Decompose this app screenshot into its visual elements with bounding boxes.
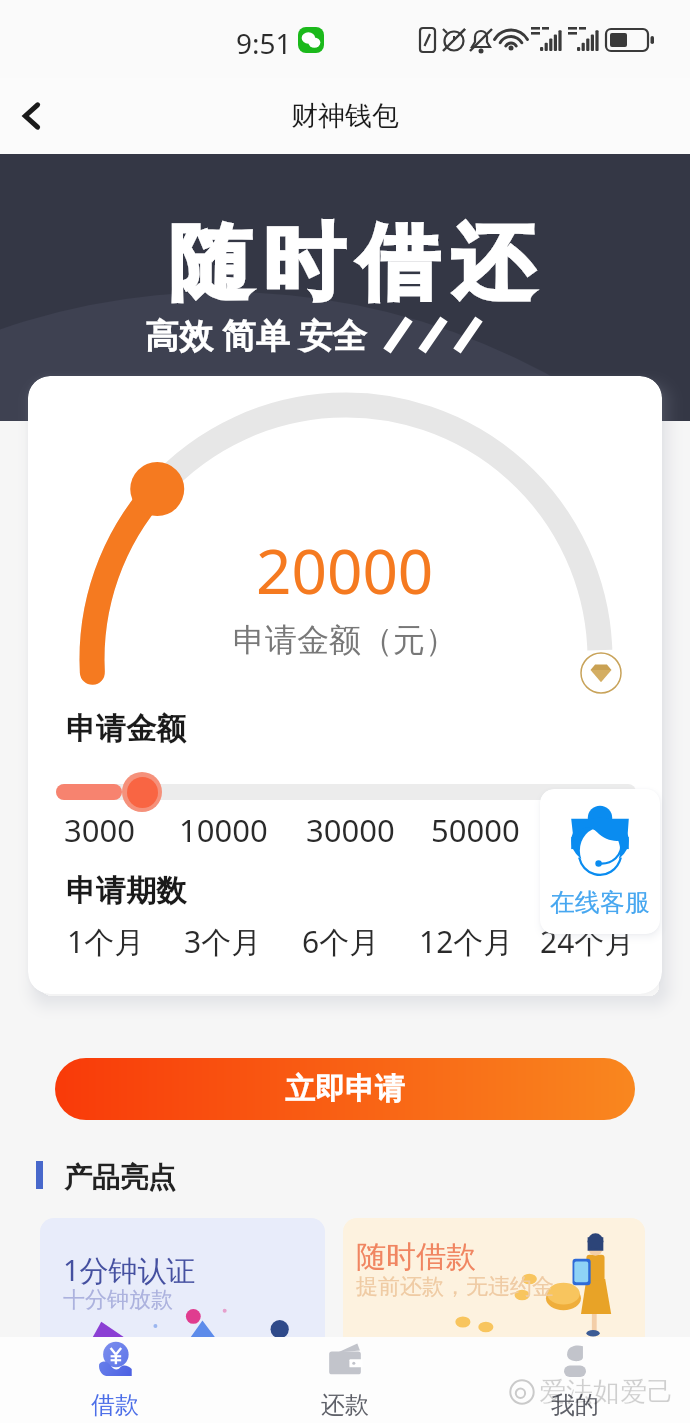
button[interactable]: 50000 (431, 808, 541, 852)
staticText: 9:51 (236, 24, 292, 62)
staticText: 申请金额（元） (233, 620, 457, 660)
staticText: 24个月 (540, 921, 635, 962)
button[interactable]: 立即申请 (55, 1058, 635, 1120)
button[interactable]: 6个月 (302, 918, 408, 964)
button[interactable]: 24个月 (540, 918, 646, 964)
staticText: 还款 (321, 1390, 369, 1420)
staticText: 我的 (551, 1390, 599, 1420)
staticText: 50000 (431, 809, 520, 851)
button[interactable]: 10000 (179, 808, 289, 852)
button[interactable]: 30000 (306, 808, 416, 852)
staticText: 3000 (64, 809, 135, 851)
staticText: 1分钟认证 (63, 1250, 196, 1290)
staticText: 申请期数 (66, 872, 186, 910)
staticText: 6个月 (302, 921, 380, 962)
button[interactable]: 1个月 (67, 918, 173, 964)
staticText: 1个月 (67, 921, 145, 962)
button[interactable]: 我的 (460, 1337, 690, 1423)
staticText: 十分钟放款 (63, 1286, 173, 1314)
staticText: 申请金额 (66, 710, 186, 748)
staticText: 爱法如爱己 (539, 1375, 674, 1409)
staticText: 借款 (91, 1390, 139, 1420)
staticText: 产品亮点 (64, 1160, 176, 1195)
button[interactable]: 12个月 (419, 918, 525, 964)
button[interactable]: 还款 (230, 1337, 460, 1423)
button[interactable] (56, 768, 636, 816)
staticText: 高效 简单 安全 (145, 312, 367, 358)
staticText: 随时借款 (356, 1238, 476, 1276)
staticText: 在线客服 (550, 887, 650, 918)
button[interactable]: Back (4, 88, 60, 144)
staticText: 立即申请 (285, 1070, 405, 1108)
button[interactable]: 借款 (0, 1337, 230, 1423)
button[interactable]: 3个月 (184, 918, 290, 964)
button[interactable]: 1分钟认证 (40, 1218, 325, 1378)
button[interactable]: 随时借款 (343, 1218, 645, 1378)
button[interactable]: 在线客服 (540, 789, 660, 934)
staticText: 20000 (256, 528, 434, 612)
staticText: 3个月 (184, 921, 262, 962)
staticText: 财神钱包 (291, 99, 399, 133)
staticText: 12个月 (419, 921, 514, 962)
staticText: 提前还款，无违约金 (356, 1273, 554, 1301)
staticText: 随时借还 (163, 212, 539, 315)
staticText: 10000 (179, 809, 268, 851)
button[interactable]: 3000 (64, 808, 174, 852)
staticText: 30000 (306, 809, 395, 851)
